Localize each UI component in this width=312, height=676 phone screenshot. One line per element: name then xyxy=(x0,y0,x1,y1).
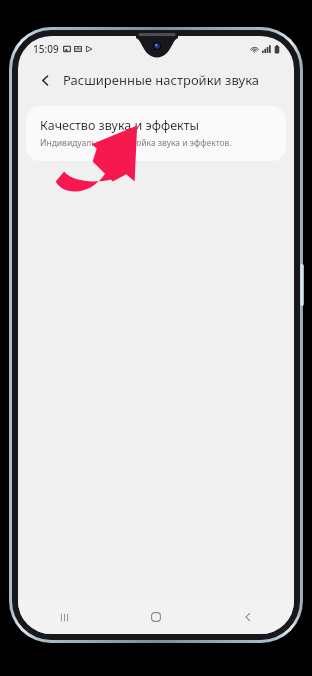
other: Power button xyxy=(300,264,304,306)
staticText: Качество звука и эффекты xyxy=(40,117,200,134)
button[interactable]: Recent apps xyxy=(18,600,110,634)
staticText: Расширенные настройки звука xyxy=(63,71,260,89)
button[interactable]: Home xyxy=(110,600,202,634)
button[interactable]: Качество звука и эффекты xyxy=(26,106,286,161)
button[interactable]: Back xyxy=(34,69,56,91)
staticText: Индивидуальная настройка звука и эффекто… xyxy=(40,137,232,149)
staticText: 15:09 xyxy=(33,42,59,56)
button[interactable]: Back xyxy=(202,600,294,634)
